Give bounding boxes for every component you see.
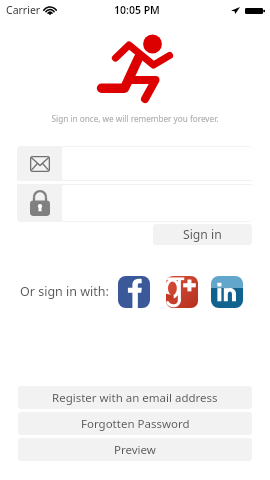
button[interactable]: Forgotten Password <box>18 412 252 435</box>
button[interactable]: Preview <box>18 438 252 461</box>
staticText: Sign in once, we will remember you forev… <box>0 113 270 124</box>
staticText: Register with an email address <box>52 390 218 406</box>
staticText: Sign in <box>183 226 222 243</box>
button[interactable]: Sign in with Google Plus <box>166 276 198 308</box>
staticText: Forgotten Password <box>81 416 190 432</box>
staticText: 10:05 PM <box>114 3 160 17</box>
staticText: Preview <box>114 442 156 458</box>
button[interactable]: Register with an email address <box>18 386 252 409</box>
button[interactable]: Sign in with LinkedIn <box>211 276 243 308</box>
staticText: Or sign in with: <box>20 283 109 300</box>
button[interactable]: Sign in with Facebook <box>118 276 150 308</box>
button[interactable]: Sign in <box>153 224 252 245</box>
staticText: Carrier <box>6 3 41 17</box>
